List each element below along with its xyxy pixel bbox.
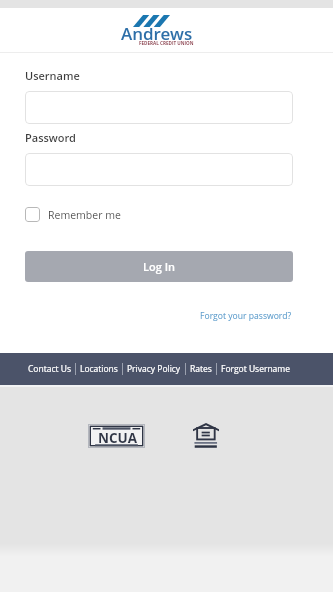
button[interactable]: Log In <box>25 251 293 282</box>
staticText: Rates <box>190 363 212 375</box>
button[interactable]: Contact Us <box>24 363 75 375</box>
staticText: Password <box>25 130 76 145</box>
staticText: Contact Us <box>28 363 71 375</box>
button[interactable]: Locations <box>76 363 122 375</box>
staticText: Andrews <box>121 22 193 45</box>
staticText: Log In <box>143 259 175 274</box>
button[interactable]: Equal Housing Lender <box>193 423 219 448</box>
button[interactable]: Privacy Policy <box>123 363 185 375</box>
button[interactable]: NCUA insured <box>88 424 145 448</box>
button[interactable] <box>25 91 293 124</box>
staticText: Remember me <box>48 208 121 222</box>
staticText: Privacy Policy <box>127 363 181 375</box>
staticText: Locations <box>80 363 118 375</box>
staticText: Username <box>25 68 80 83</box>
button[interactable]: Forgot Username <box>217 363 295 375</box>
staticText: Forgot Username <box>221 363 291 375</box>
button[interactable] <box>25 153 293 186</box>
staticText: FEDERAL CREDIT UNION <box>139 40 194 46</box>
staticText: NCUA <box>98 429 137 447</box>
button[interactable]: Forgot your password? <box>200 310 292 322</box>
button[interactable]: Remember me <box>25 204 121 219</box>
button[interactable]: Rates <box>186 363 216 375</box>
